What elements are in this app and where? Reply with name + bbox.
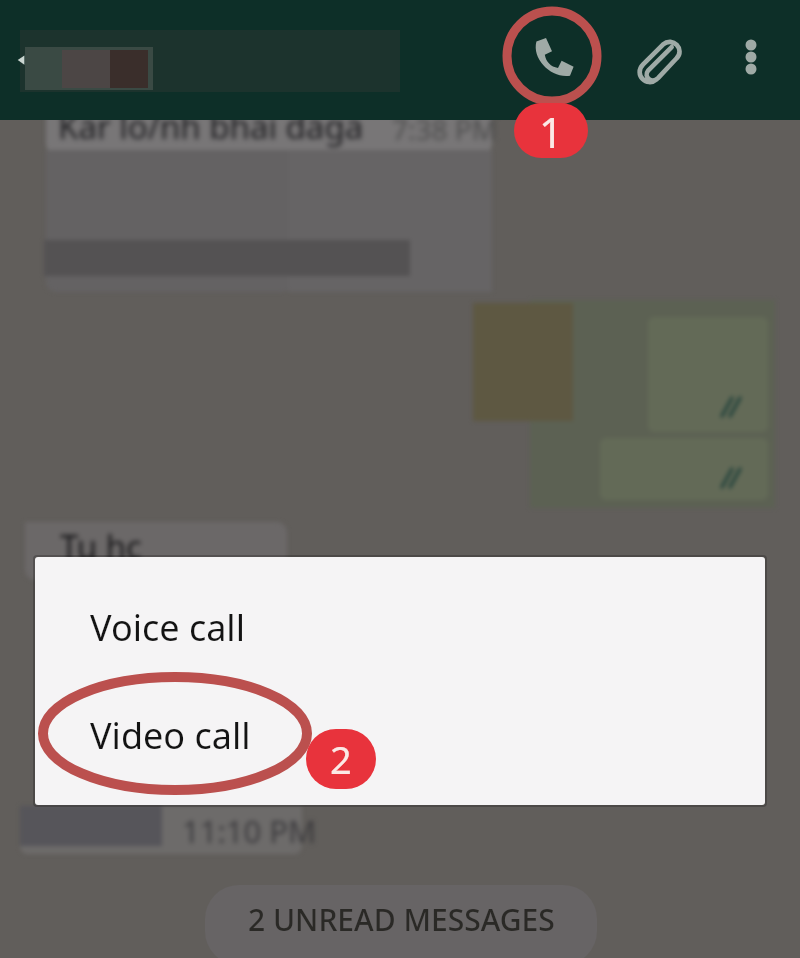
staticText: Voice call (90, 603, 245, 652)
button[interactable]: Voice call (35, 583, 765, 671)
staticText: Tu hc (60, 524, 142, 569)
staticText: 2 UNREAD MESSAGES (248, 899, 555, 940)
staticText: 2 (330, 733, 352, 785)
staticText: Video call (90, 711, 251, 760)
staticText: Kar lo/nh bhai daga (58, 104, 364, 149)
button[interactable]: Back (2, 40, 42, 80)
button[interactable]: Video call (35, 691, 765, 779)
button[interactable]: Attach (627, 26, 689, 88)
button[interactable]: 2 UNREAD MESSAGES (205, 885, 597, 958)
staticText: 7:38 PM (392, 110, 498, 148)
staticText: 11:10 PM (182, 810, 317, 852)
staticText: 1 (539, 103, 564, 158)
button[interactable]: Call (522, 26, 582, 86)
button[interactable]: More options (726, 29, 776, 79)
